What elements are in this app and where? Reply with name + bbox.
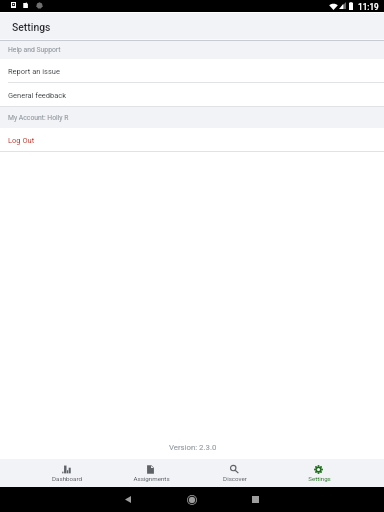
button[interactable]: Discover bbox=[207, 459, 263, 487]
other: Back bbox=[125, 496, 131, 503]
button[interactable]: Assignments bbox=[123, 459, 179, 487]
button[interactable]: Log Out bbox=[0, 128, 384, 152]
button[interactable]: General feedback bbox=[0, 83, 384, 107]
staticText: Settings bbox=[308, 475, 331, 482]
button[interactable]: Report an issue bbox=[0, 59, 384, 83]
staticText: Settings bbox=[12, 21, 51, 33]
staticText: 11:19 bbox=[358, 2, 379, 12]
other: Home bbox=[187, 495, 197, 505]
staticText: Version: 2.3.0 bbox=[169, 443, 217, 452]
button[interactable]: Settings bbox=[291, 459, 347, 487]
button[interactable]: Dashboard bbox=[39, 459, 95, 487]
staticText: General feedback bbox=[8, 91, 67, 100]
staticText: Dashboard bbox=[52, 475, 82, 482]
staticText: Help and Support bbox=[8, 46, 61, 54]
staticText: Log Out bbox=[8, 136, 35, 145]
staticText: Assignments bbox=[133, 475, 170, 482]
staticText: My Account: Holly R bbox=[8, 114, 69, 122]
staticText: Report an issue bbox=[8, 67, 60, 76]
staticText: Discover bbox=[223, 475, 247, 482]
